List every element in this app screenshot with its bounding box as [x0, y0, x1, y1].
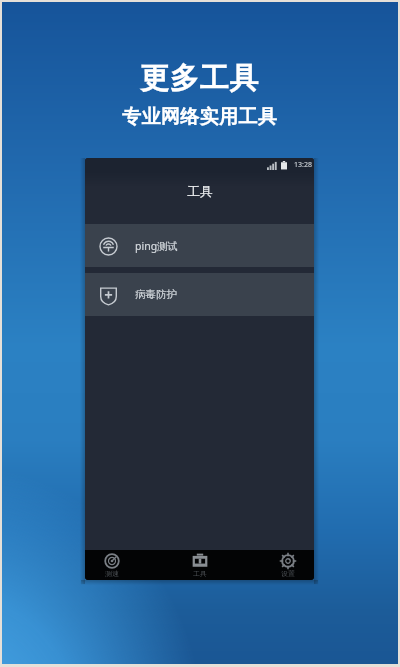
staticText: 专业网络实用工具: [122, 105, 278, 129]
button[interactable]: 测速: [85, 550, 138, 580]
staticText: 工具: [193, 569, 207, 578]
staticText: 测速: [105, 569, 119, 578]
button[interactable]: 工具: [173, 550, 226, 580]
staticText: 工具: [187, 183, 213, 199]
button[interactable]: 病毒防护: [85, 273, 314, 316]
staticText: 更多工具: [140, 60, 260, 97]
button[interactable]: 设置: [261, 550, 314, 580]
button[interactable]: ping测试: [85, 224, 314, 267]
staticText: ping测试: [135, 239, 179, 253]
staticText: 设置: [281, 569, 295, 578]
staticText: 病毒防护: [135, 288, 177, 301]
staticText: 13:28: [294, 160, 312, 170]
